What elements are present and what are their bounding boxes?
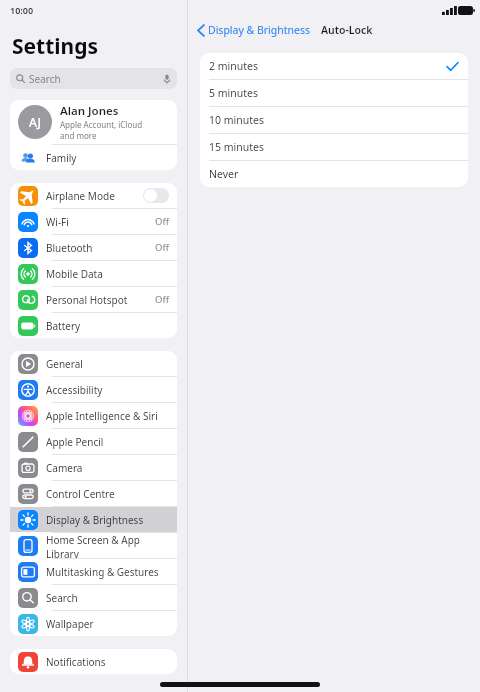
staticText: Off: [155, 293, 169, 306]
staticText: Control Centre: [46, 487, 115, 501]
button[interactable]: Bluetooth: [10, 235, 177, 260]
button[interactable]: 15 minutes: [200, 134, 468, 160]
staticText: Apple Intelligence & Siri: [46, 409, 158, 423]
button[interactable]: Multitasking & Gestures: [10, 559, 177, 584]
button[interactable]: General: [10, 351, 177, 376]
staticText: Camera: [46, 461, 83, 475]
button[interactable]: 10 minutes: [200, 107, 468, 133]
staticText: Airplane Mode: [46, 189, 115, 203]
button[interactable]: Camera: [10, 455, 177, 480]
button[interactable]: Search: [10, 68, 177, 89]
button[interactable]: Accessibility: [10, 377, 177, 402]
staticText: 10:00: [10, 4, 34, 16]
staticText: and more: [60, 130, 97, 141]
button[interactable]: Battery: [10, 313, 177, 338]
staticText: 10 minutes: [209, 113, 264, 127]
staticText: Alan Jones: [60, 103, 119, 119]
button[interactable]: Apple Intelligence & Siri: [10, 403, 177, 428]
button[interactable]: Never: [200, 161, 468, 187]
staticText: Family: [46, 151, 77, 165]
staticText: Personal Hotspot: [46, 293, 128, 307]
staticText: 5 minutes: [209, 86, 258, 100]
staticText: Auto-Lock: [321, 23, 373, 37]
button[interactable]: 2 minutes: [200, 53, 468, 79]
button[interactable]: Notifications: [10, 649, 177, 674]
staticText: 2 minutes: [209, 59, 258, 73]
button[interactable]: Wallpaper: [10, 611, 177, 636]
button[interactable]: Personal Hotspot: [10, 287, 177, 312]
button[interactable]: Home Screen & App Library: [10, 533, 177, 558]
staticText: Display & Brightness: [208, 23, 311, 37]
staticText: Mobile Data: [46, 267, 103, 281]
button[interactable]: Display & Brightness: [10, 507, 177, 532]
button[interactable]: Display & Brightness: [196, 21, 313, 39]
staticText: Wallpaper: [46, 617, 94, 631]
staticText: Off: [155, 215, 169, 228]
staticText: Search: [29, 72, 61, 86]
button[interactable]: 5 minutes: [200, 80, 468, 106]
staticText: Settings: [12, 32, 99, 61]
button[interactable]: Mobile Data: [10, 261, 177, 286]
staticText: 15 minutes: [209, 140, 264, 154]
staticText: Battery: [46, 319, 81, 333]
staticText: Home Screen & App Library: [46, 533, 169, 558]
button[interactable]: Wi-Fi: [10, 209, 177, 234]
staticText: AJ: [29, 114, 41, 130]
staticText: Display & Brightness: [46, 513, 144, 527]
staticText: Accessibility: [46, 383, 103, 397]
staticText: Wi-Fi: [46, 215, 69, 229]
staticText: Search: [46, 591, 78, 605]
staticText: Off: [155, 241, 169, 254]
staticText: General: [46, 357, 83, 371]
button[interactable]: Search: [10, 585, 177, 610]
staticText: Bluetooth: [46, 241, 93, 255]
staticText: Notifications: [46, 655, 106, 669]
staticText: Apple Account, iCloud: [60, 119, 143, 130]
button[interactable]: Airplane Mode: [10, 183, 177, 208]
button[interactable]: Control Centre: [10, 481, 177, 506]
button[interactable]: Family: [10, 145, 177, 170]
staticText: Never: [209, 167, 239, 181]
button[interactable]: Airplane Mode toggle: [143, 188, 169, 203]
button[interactable]: AJ: [10, 100, 177, 144]
staticText: Apple Pencil: [46, 435, 104, 449]
button[interactable]: Apple Pencil: [10, 429, 177, 454]
staticText: Multitasking & Gestures: [46, 565, 159, 579]
